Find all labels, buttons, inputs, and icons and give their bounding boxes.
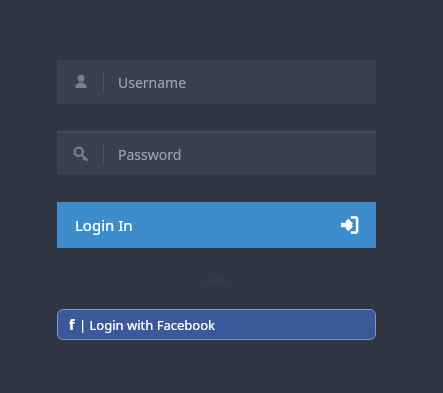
staticText: f <box>69 315 75 334</box>
staticText: Login In <box>75 215 133 235</box>
staticText: Password <box>118 145 182 164</box>
button[interactable]: Login In <box>57 202 376 248</box>
button[interactable]: f <box>57 309 376 340</box>
staticText: - OR - <box>201 271 232 287</box>
button[interactable]: Password <box>57 133 376 175</box>
button[interactable]: Username <box>57 60 376 104</box>
other: Sign in <box>340 216 358 234</box>
staticText: Username <box>118 73 187 92</box>
staticText: | Login with Facebook <box>79 316 215 334</box>
